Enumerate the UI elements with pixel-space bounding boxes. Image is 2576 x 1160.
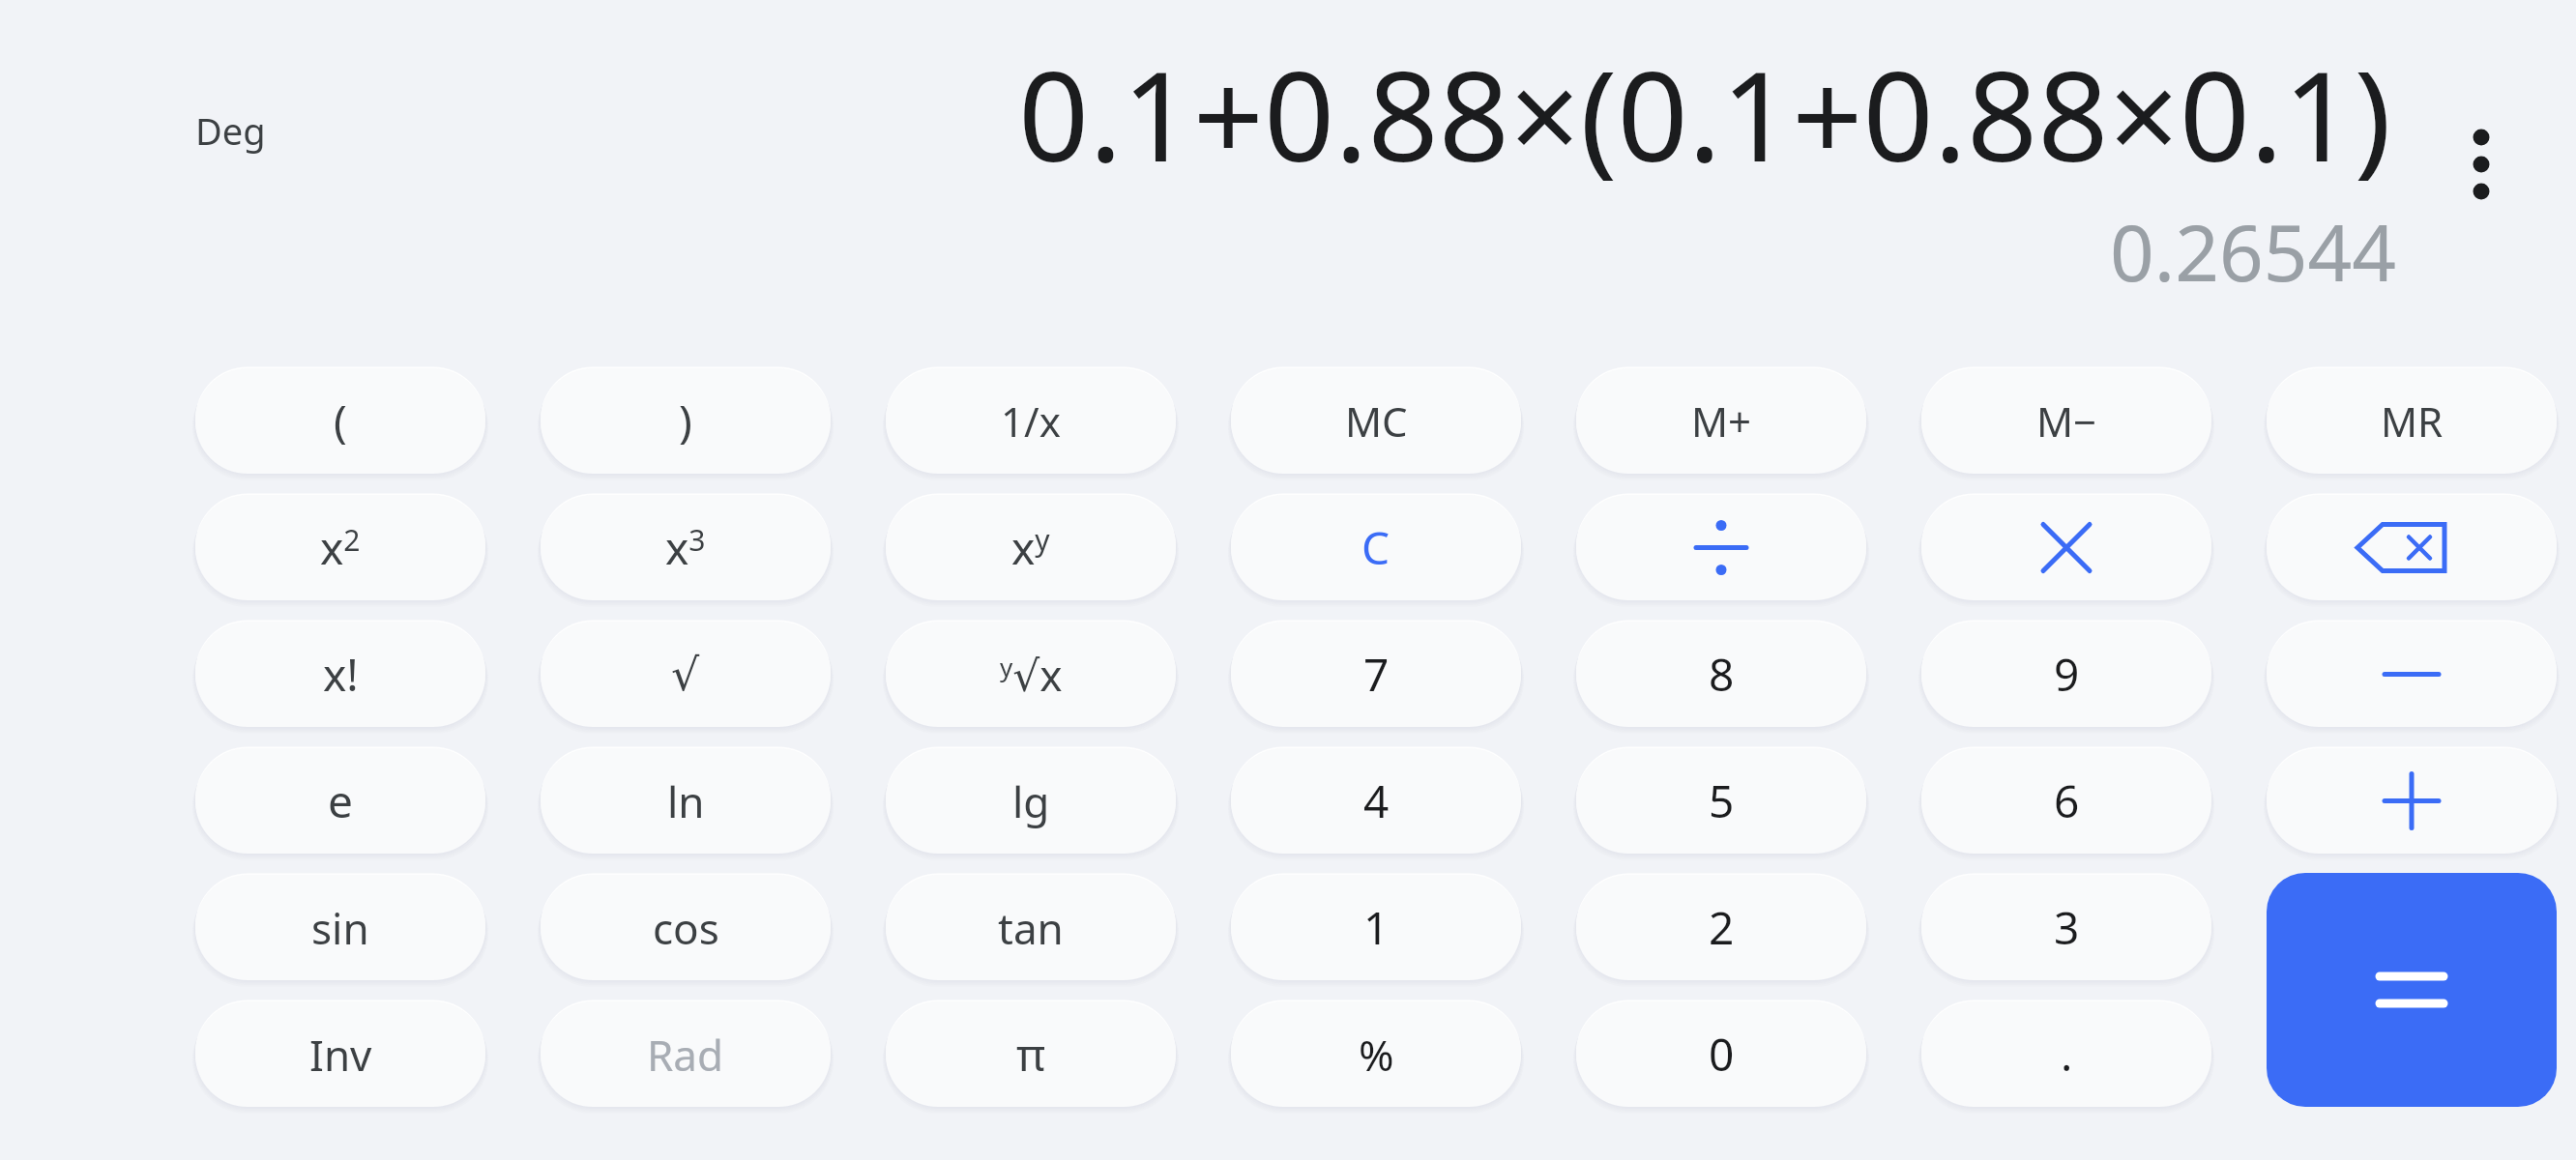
staticText: 3: [2054, 897, 2080, 958]
staticText: ln: [667, 772, 705, 830]
staticText: 5: [1709, 770, 1735, 831]
button[interactable]: C: [1231, 495, 1521, 600]
button[interactable]: Multiply: [1921, 495, 2211, 600]
button[interactable]: M−: [1921, 368, 2211, 474]
staticText: 0.1+0.88×(0.1+0.88×0.1): [1018, 29, 2391, 184]
button[interactable]: Backspace: [2267, 495, 2557, 600]
button[interactable]: x!: [195, 622, 485, 727]
button[interactable]: Inv: [195, 1001, 485, 1107]
staticText: π: [1016, 1024, 1046, 1085]
staticText: sin: [311, 899, 369, 957]
staticText: y√x: [1000, 646, 1063, 704]
button[interactable]: xy: [886, 495, 1176, 600]
staticText: xy: [1011, 517, 1050, 578]
staticText: √: [671, 649, 700, 701]
button[interactable]: Rad: [541, 1001, 831, 1107]
button[interactable]: 7: [1231, 622, 1521, 727]
button[interactable]: Deg: [195, 105, 266, 156]
button[interactable]: π: [886, 1001, 1176, 1107]
button[interactable]: Minus: [2267, 622, 2557, 727]
staticText: x!: [323, 644, 359, 705]
staticText: M−: [2036, 393, 2097, 449]
button[interactable]: 1/x: [886, 368, 1176, 474]
staticText: 4: [1363, 770, 1390, 831]
button[interactable]: 5: [1576, 748, 1866, 854]
button[interactable]: MC: [1231, 368, 1521, 474]
staticText: (: [334, 391, 347, 451]
staticText: x2: [320, 517, 361, 578]
button[interactable]: 6: [1921, 748, 2211, 854]
staticText: %: [1359, 1026, 1394, 1084]
button[interactable]: tan: [886, 875, 1176, 980]
staticText: C: [1361, 517, 1390, 578]
button[interactable]: e: [195, 748, 485, 854]
staticText: MC: [1345, 393, 1408, 449]
button[interactable]: 2: [1576, 875, 1866, 980]
button[interactable]: 9: [1921, 622, 2211, 727]
button[interactable]: Plus: [2267, 748, 2557, 854]
staticText: .: [2061, 1024, 2073, 1085]
staticText: ): [679, 391, 692, 451]
staticText: 1/x: [1001, 393, 1061, 449]
staticText: 9: [2054, 644, 2080, 705]
staticText: 1: [1363, 897, 1390, 958]
button[interactable]: MR: [2267, 368, 2557, 474]
button[interactable]: .: [1921, 1001, 2211, 1107]
button[interactable]: More options: [2437, 101, 2526, 227]
staticText: M+: [1691, 393, 1752, 449]
button[interactable]: 1: [1231, 875, 1521, 980]
staticText: Rad: [647, 1026, 724, 1084]
button[interactable]: lg: [886, 748, 1176, 854]
button[interactable]: Equals: [2267, 873, 2557, 1107]
button[interactable]: 0: [1576, 1001, 1866, 1107]
button[interactable]: sin: [195, 875, 485, 980]
button[interactable]: x2: [195, 495, 485, 600]
staticText: MR: [2381, 393, 2444, 449]
button[interactable]: x3: [541, 495, 831, 600]
button[interactable]: 3: [1921, 875, 2211, 980]
button[interactable]: √: [541, 622, 831, 727]
staticText: Inv: [309, 1026, 372, 1084]
button[interactable]: 4: [1231, 748, 1521, 854]
button[interactable]: Divide: [1576, 495, 1866, 600]
button[interactable]: cos: [541, 875, 831, 980]
staticText: tan: [998, 899, 1064, 957]
staticText: 6: [2054, 770, 2080, 831]
button[interactable]: 8: [1576, 622, 1866, 727]
staticText: 0: [1709, 1024, 1735, 1085]
staticText: 2: [1709, 897, 1735, 958]
button[interactable]: ): [541, 368, 831, 474]
button[interactable]: M+: [1576, 368, 1866, 474]
staticText: x3: [665, 517, 706, 578]
staticText: cos: [653, 899, 719, 957]
button[interactable]: y√x: [886, 622, 1176, 727]
staticText: e: [328, 770, 353, 831]
button[interactable]: ln: [541, 748, 831, 854]
staticText: 0.26544: [2110, 198, 2396, 300]
staticText: 7: [1363, 644, 1390, 705]
staticText: 8: [1709, 644, 1735, 705]
button[interactable]: %: [1231, 1001, 1521, 1107]
staticText: Deg: [195, 105, 266, 156]
staticText: lg: [1012, 772, 1050, 830]
button[interactable]: (: [195, 368, 485, 474]
